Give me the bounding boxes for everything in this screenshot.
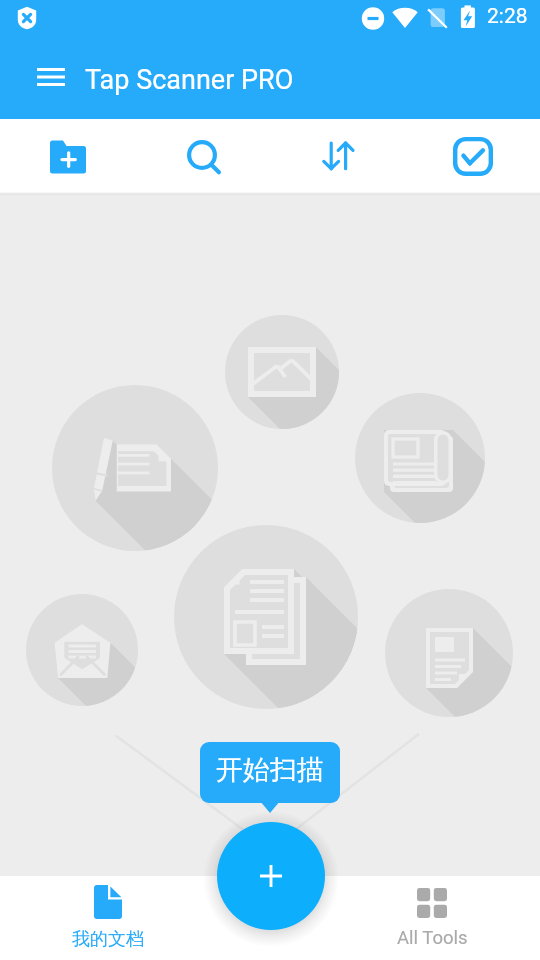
button[interactable]: All Tools: [324, 876, 540, 960]
button[interactable]: Menu: [19, 45, 83, 109]
button[interactable]: Sort: [270, 119, 405, 195]
staticText: Tap Scanner PRO: [85, 64, 294, 96]
staticText: All Tools: [397, 927, 468, 949]
button[interactable]: 我的文档: [0, 876, 216, 960]
staticText: 开始扫描: [216, 753, 324, 787]
staticText: 2:28: [487, 4, 528, 29]
button[interactable]: New scan: [217, 822, 325, 930]
button[interactable]: 开始扫描: [200, 742, 340, 803]
staticText: 我的文档: [72, 928, 144, 951]
button[interactable]: Search: [135, 119, 270, 195]
button[interactable]: Select all: [405, 119, 540, 195]
button[interactable]: New folder: [0, 119, 135, 195]
